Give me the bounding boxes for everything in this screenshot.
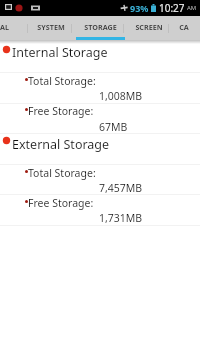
staticText: 67MB bbox=[99, 120, 128, 134]
staticText: GENERAL bbox=[0, 22, 9, 32]
staticText: 10:27 bbox=[159, 1, 185, 15]
button[interactable] bbox=[0, 194, 200, 225]
button[interactable]: SCREEN bbox=[124, 16, 168, 40]
staticText: CAMERA bbox=[179, 22, 189, 32]
staticText: Total Storage: bbox=[28, 74, 96, 88]
staticText: SCREEN bbox=[135, 22, 163, 32]
staticText: Free Storage: bbox=[28, 196, 94, 210]
button[interactable] bbox=[0, 103, 200, 134]
staticText: External Storage bbox=[12, 136, 110, 153]
staticText: 1,008MB bbox=[99, 89, 143, 103]
staticText: SYSTEM bbox=[37, 22, 65, 32]
button[interactable] bbox=[0, 133, 200, 164]
button[interactable] bbox=[0, 42, 200, 73]
button[interactable] bbox=[0, 72, 200, 103]
button[interactable]: GENERAL bbox=[0, 16, 27, 40]
staticText: Free Storage: bbox=[28, 104, 94, 118]
button[interactable]: SYSTEM bbox=[28, 16, 71, 40]
staticText: STORAGE bbox=[84, 22, 117, 32]
button[interactable] bbox=[0, 164, 200, 194]
staticText: AM bbox=[187, 4, 197, 12]
staticText: 1,731MB bbox=[99, 211, 143, 225]
staticText: 93% bbox=[130, 2, 149, 14]
staticText: 7,457MB bbox=[99, 181, 143, 195]
staticText: Internal Storage bbox=[12, 44, 108, 61]
staticText: Total Storage: bbox=[28, 166, 96, 180]
button[interactable]: STORAGE bbox=[72, 16, 123, 40]
